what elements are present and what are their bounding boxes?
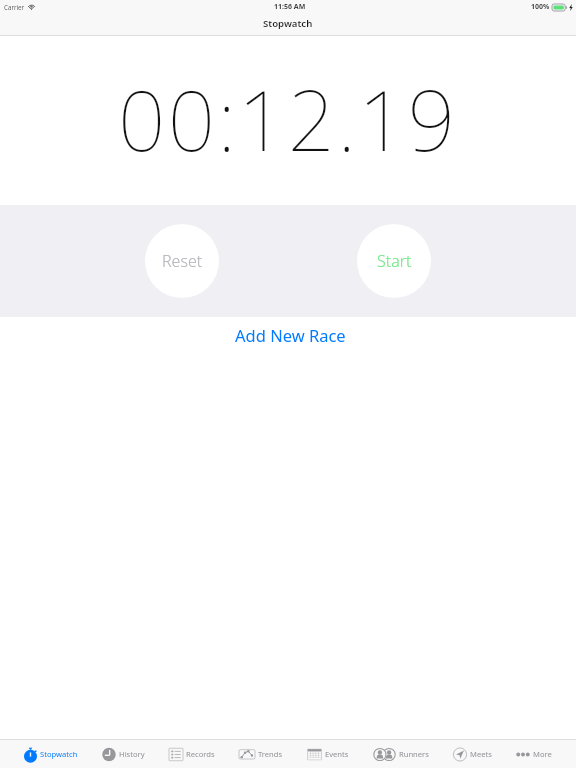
button[interactable]: Records bbox=[169, 740, 215, 768]
button[interactable]: Meets bbox=[453, 740, 492, 768]
staticText: Events bbox=[325, 749, 349, 759]
staticText: Stopwatch bbox=[40, 749, 78, 759]
staticText: Add New Race bbox=[235, 324, 346, 346]
button[interactable]: Stopwatch bbox=[24, 740, 78, 768]
button[interactable]: Events bbox=[307, 740, 349, 768]
staticText: Trends bbox=[258, 749, 283, 759]
staticText: More bbox=[533, 749, 552, 759]
button[interactable]: Runners bbox=[373, 740, 429, 768]
button[interactable]: More bbox=[516, 740, 552, 768]
staticText: 11:56 AM bbox=[274, 2, 306, 12]
staticText: Meets bbox=[470, 749, 492, 759]
button[interactable]: History bbox=[102, 740, 145, 768]
staticText: Records bbox=[186, 749, 215, 759]
staticText: Runners bbox=[399, 749, 429, 759]
staticText: 100% bbox=[531, 2, 550, 12]
staticText: History bbox=[119, 749, 145, 759]
staticText: Start bbox=[377, 250, 412, 272]
staticText: 00:12.19 bbox=[118, 62, 458, 153]
staticText: Stopwatch bbox=[263, 17, 313, 30]
staticText: Carrier bbox=[4, 3, 25, 11]
button[interactable]: Trends bbox=[239, 740, 283, 768]
button[interactable]: Start bbox=[357, 224, 431, 298]
button[interactable]: Reset bbox=[145, 224, 219, 298]
button[interactable]: Add New Race bbox=[221, 318, 360, 352]
staticText: Reset bbox=[162, 250, 203, 272]
